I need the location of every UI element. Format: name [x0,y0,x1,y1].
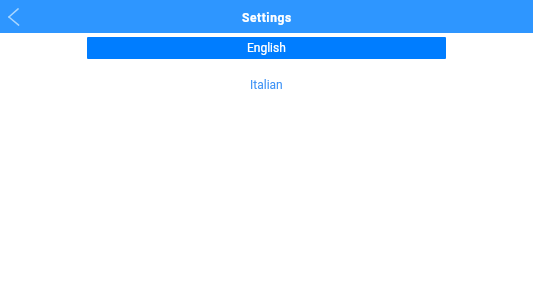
staticText: Italian [250,78,283,92]
button[interactable]: English [87,37,446,59]
staticText: English [247,41,286,55]
button[interactable]: Back [0,0,28,33]
staticText: Settings [242,11,292,25]
button[interactable]: Italian [87,75,446,95]
